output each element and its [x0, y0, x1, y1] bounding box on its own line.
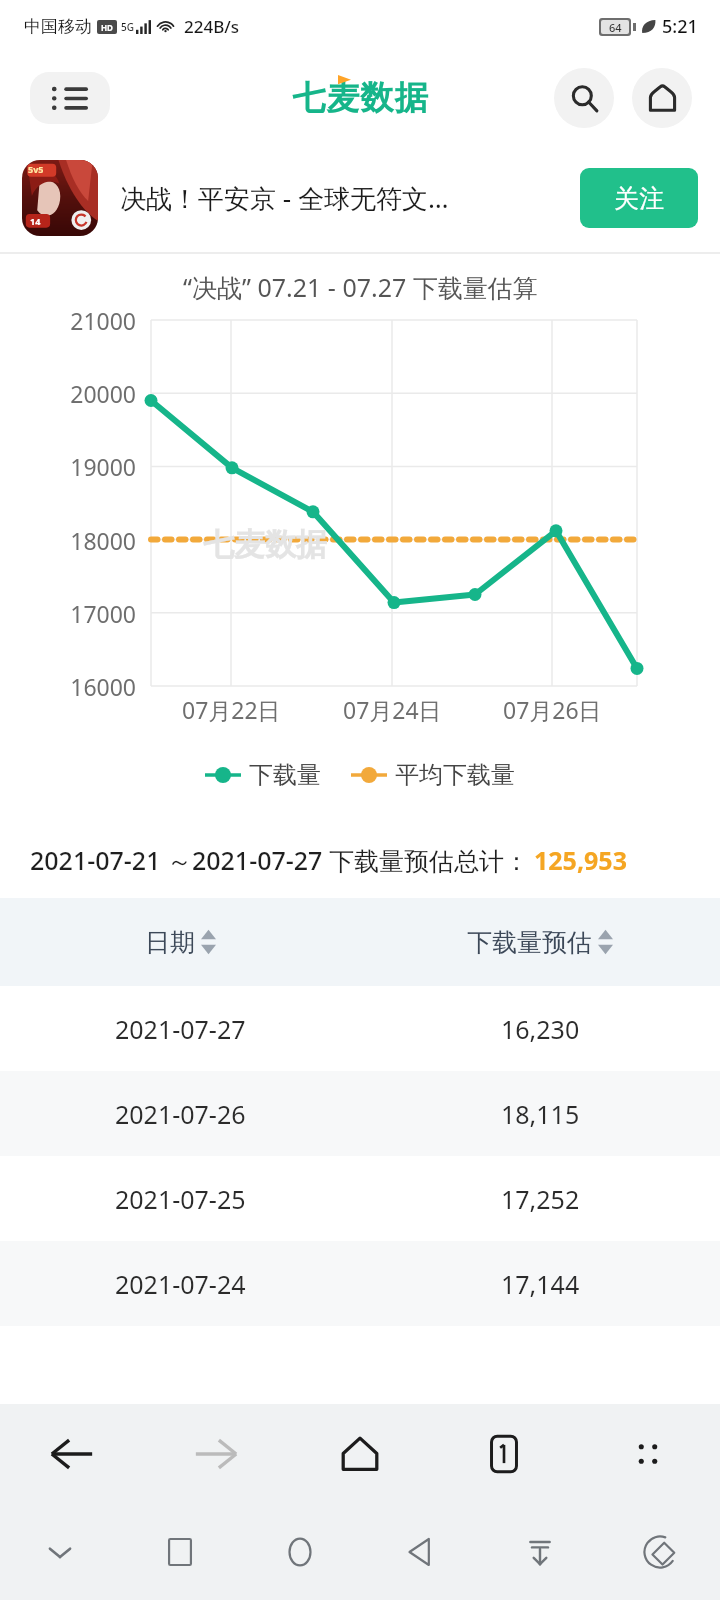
staticText: 18000: [0, 525, 136, 556]
staticText: 2021-07-27: [115, 1012, 246, 1046]
staticText: 16,230: [501, 1012, 580, 1046]
staticText: 18,115: [501, 1097, 580, 1131]
button[interactable]: 关注: [580, 168, 698, 228]
staticText: 5G: [121, 20, 134, 34]
staticText: 21000: [0, 305, 136, 336]
button[interactable]: Back: [20, 1404, 124, 1504]
button[interactable]: Menu: [30, 72, 110, 124]
button[interactable]: 2021-07-25: [0, 1156, 720, 1241]
staticText: 14: [30, 215, 41, 227]
staticText: 07月24日: [343, 694, 442, 725]
staticText: 20000: [0, 378, 136, 409]
staticText: 16000: [0, 671, 136, 702]
button[interactable]: 下载量: [205, 760, 321, 790]
button[interactable]: 2021-07-26: [0, 1071, 720, 1156]
staticText: 平均下载量: [395, 760, 515, 790]
staticText: 中国移动: [24, 16, 92, 37]
staticText: 下载量: [249, 760, 321, 790]
button[interactable]: Scroll to bottom: [492, 1504, 588, 1600]
staticText: 5v5: [28, 163, 44, 175]
staticText: 2021-07-24: [115, 1267, 246, 1301]
staticText: 64: [609, 20, 622, 34]
staticText: 日期: [145, 927, 195, 958]
staticText: HD: [101, 22, 113, 33]
button[interactable]: Home: [252, 1504, 348, 1600]
staticText: “决战” 07.21 - 07.27 下载量估算: [183, 270, 538, 304]
staticText: 224B/s: [184, 15, 240, 38]
button[interactable]: 2021-07-24: [0, 1241, 720, 1326]
staticText: 下载量预估: [467, 927, 592, 958]
staticText: 关注: [614, 183, 664, 214]
button[interactable]: 2021-07-27: [0, 986, 720, 1071]
button[interactable]: Collapse: [12, 1504, 108, 1600]
button[interactable]: App icon: [22, 160, 98, 236]
button[interactable]: Tabs: [452, 1404, 556, 1504]
button[interactable]: Home: [308, 1404, 412, 1504]
button[interactable]: 平均下载量: [351, 760, 515, 790]
staticText: 19000: [0, 451, 136, 482]
staticText: 2021-07-21 ～2021-07-27 下载量预估总计：: [30, 843, 529, 877]
button[interactable]: More options: [596, 1404, 700, 1504]
staticText: 07月26日: [503, 694, 602, 725]
button[interactable]: Home: [632, 68, 692, 128]
staticText: 17000: [0, 598, 136, 629]
staticText: 17,144: [501, 1267, 580, 1301]
staticText: 17,252: [501, 1182, 580, 1216]
button[interactable]: Recent apps: [132, 1504, 228, 1600]
staticText: 2021-07-26: [115, 1097, 246, 1131]
button[interactable]: 下载量预估: [360, 898, 720, 986]
staticText: 125,953: [534, 843, 627, 877]
staticText: 七麦数据: [203, 525, 327, 564]
button[interactable]: Back: [372, 1504, 468, 1600]
button[interactable]: Forward: [164, 1404, 268, 1504]
button[interactable]: Search: [554, 68, 614, 128]
staticText: 2021-07-25: [115, 1182, 246, 1216]
staticText: 5:21: [662, 14, 698, 39]
staticText: 07月22日: [182, 694, 281, 725]
button[interactable]: 日期: [0, 898, 360, 986]
staticText: 决战！平安京 - 全球无符文…: [120, 180, 570, 216]
staticText: 七麦数据: [292, 77, 428, 119]
button[interactable]: Rotate screen: [612, 1504, 708, 1600]
